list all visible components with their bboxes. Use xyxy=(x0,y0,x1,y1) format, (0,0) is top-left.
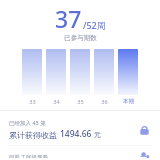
staticText: 33 xyxy=(29,98,36,105)
staticText: 本期 xyxy=(123,98,134,105)
button[interactable]: 提现详情 xyxy=(135,153,153,158)
staticText: 累计获得收益 xyxy=(9,129,60,140)
button[interactable]: 已经加入 43 第 xyxy=(0,117,160,142)
staticText: 1494.66 xyxy=(60,128,92,140)
staticText: 37 xyxy=(55,3,82,34)
button[interactable] xyxy=(70,49,90,95)
button[interactable] xyxy=(118,49,138,95)
staticText: 目前 7 张提现卷 xyxy=(9,153,49,158)
button[interactable]: 收益详情 xyxy=(135,121,153,139)
button[interactable]: 目前 7 张提现卷 xyxy=(0,151,160,160)
staticText: 35 xyxy=(77,98,84,105)
button[interactable] xyxy=(94,49,114,95)
staticText: 34 xyxy=(53,98,60,105)
staticText: 已参与期数 xyxy=(64,34,97,42)
staticText: 已经加入 43 第 xyxy=(9,119,46,127)
staticText: 36 xyxy=(101,98,108,105)
staticText: 元 xyxy=(92,130,101,140)
button[interactable] xyxy=(22,49,42,95)
button[interactable] xyxy=(46,49,66,95)
staticText: /52周 xyxy=(83,19,106,31)
